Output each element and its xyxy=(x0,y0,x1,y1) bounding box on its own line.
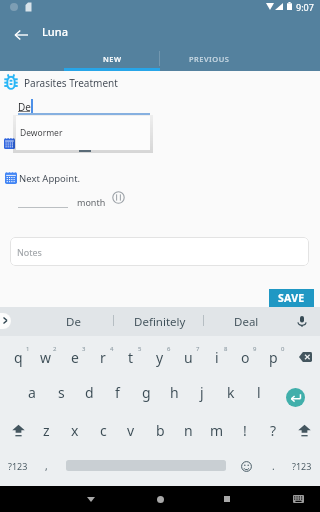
button[interactable]: Home xyxy=(145,486,175,512)
staticText: t xyxy=(128,348,134,367)
staticText: g xyxy=(142,383,151,402)
button[interactable]: Back xyxy=(76,486,106,512)
staticText: , xyxy=(45,459,48,473)
staticText: Deal xyxy=(234,314,259,330)
staticText: ?123 xyxy=(8,460,28,472)
staticText: 8 xyxy=(224,345,228,353)
button[interactable]: e xyxy=(61,340,89,374)
staticText: u xyxy=(184,348,193,367)
button[interactable]: j xyxy=(188,375,216,409)
staticText: 6 xyxy=(167,345,171,353)
button[interactable]: u xyxy=(174,340,202,374)
staticText: De xyxy=(66,314,81,330)
button[interactable]: k xyxy=(217,375,245,409)
button[interactable]: . xyxy=(259,451,287,481)
button[interactable]: m xyxy=(203,413,231,447)
button[interactable]: , xyxy=(32,451,60,481)
staticText: q xyxy=(14,348,23,367)
button[interactable]: Notes xyxy=(10,237,309,266)
staticText: z xyxy=(43,421,50,440)
staticText: c xyxy=(100,421,107,440)
button[interactable]: o xyxy=(231,340,259,374)
button[interactable]: Shift xyxy=(4,413,32,447)
button[interactable]: ? xyxy=(259,413,287,447)
button[interactable]: SAVE xyxy=(269,289,314,307)
staticText: x xyxy=(71,421,79,440)
staticText: s xyxy=(58,383,65,402)
button[interactable]: w xyxy=(32,340,60,374)
staticText: f xyxy=(115,383,120,402)
button[interactable]: n xyxy=(174,413,202,447)
staticText: b xyxy=(156,421,165,440)
button[interactable]: d xyxy=(75,375,103,409)
staticText: Notes xyxy=(17,246,42,258)
button[interactable]: Switch keyboard xyxy=(285,486,311,512)
button[interactable]: p xyxy=(259,340,287,374)
staticText: 3 xyxy=(82,345,86,353)
button[interactable]: ?123 xyxy=(4,451,32,481)
button[interactable]: y xyxy=(146,340,174,374)
button[interactable]: r xyxy=(89,340,117,374)
button[interactable]: h xyxy=(160,375,188,409)
staticText: n xyxy=(184,421,193,440)
staticText: De xyxy=(18,100,31,114)
staticText: w xyxy=(40,348,52,367)
staticText: Dewormer xyxy=(20,127,63,139)
button[interactable]: s xyxy=(47,375,75,409)
staticText: 5 xyxy=(138,345,142,353)
button[interactable]: Emoji xyxy=(232,451,260,481)
button[interactable]: De xyxy=(43,309,103,334)
button[interactable]: Enter xyxy=(286,388,305,407)
staticText: r xyxy=(100,348,106,367)
staticText: Parasites Treatment xyxy=(24,76,118,90)
button[interactable]: Backspace xyxy=(291,340,319,374)
staticText: h xyxy=(170,383,179,402)
button[interactable]: NEW xyxy=(64,47,160,71)
staticText: ?123 xyxy=(292,460,312,472)
button[interactable]: b xyxy=(146,413,174,447)
button[interactable]: l xyxy=(245,375,273,409)
staticText: e xyxy=(71,348,79,367)
button[interactable]: i xyxy=(203,340,231,374)
staticText: i xyxy=(215,348,219,367)
button[interactable]: More suggestions xyxy=(0,313,11,329)
staticText: 7 xyxy=(196,345,200,353)
staticText: l xyxy=(257,383,261,402)
staticText: v xyxy=(127,421,135,440)
staticText: 9 xyxy=(253,345,257,353)
button[interactable]: g xyxy=(132,375,160,409)
staticText: o xyxy=(241,348,250,367)
staticText: m xyxy=(210,421,224,440)
button[interactable]: Info xyxy=(111,190,126,205)
button[interactable]: q xyxy=(4,340,32,374)
staticText: Definitely xyxy=(134,314,186,330)
button[interactable]: a xyxy=(18,375,46,409)
button[interactable]: v xyxy=(117,413,145,447)
button[interactable]: c xyxy=(89,413,117,447)
button[interactable]: PREVIOUS xyxy=(160,47,258,71)
staticText: p xyxy=(269,348,278,367)
staticText: month xyxy=(77,196,106,208)
button[interactable]: f xyxy=(103,375,131,409)
staticText: y xyxy=(156,348,164,367)
staticText: SAVE xyxy=(278,291,305,305)
button[interactable]: Deal xyxy=(218,309,274,334)
staticText: 1 xyxy=(26,345,30,353)
button[interactable]: z xyxy=(32,413,60,447)
button[interactable]: Dewormer xyxy=(16,116,150,150)
staticText: 9:07 xyxy=(296,1,314,13)
staticText: . xyxy=(272,459,275,473)
button[interactable]: t xyxy=(117,340,145,374)
button[interactable]: x xyxy=(61,413,89,447)
staticText: PREVIOUS xyxy=(189,54,230,64)
button[interactable]: ! xyxy=(231,413,259,447)
button[interactable]: Voice input xyxy=(290,309,314,334)
staticText: d xyxy=(85,383,94,402)
button[interactable]: Recents xyxy=(212,486,242,512)
button[interactable]: Back xyxy=(3,17,39,53)
button[interactable]: Definitely xyxy=(126,309,194,334)
button[interactable]: Shift xyxy=(290,413,318,447)
staticText: ? xyxy=(270,421,277,440)
button[interactable]: ?123 xyxy=(288,451,316,481)
